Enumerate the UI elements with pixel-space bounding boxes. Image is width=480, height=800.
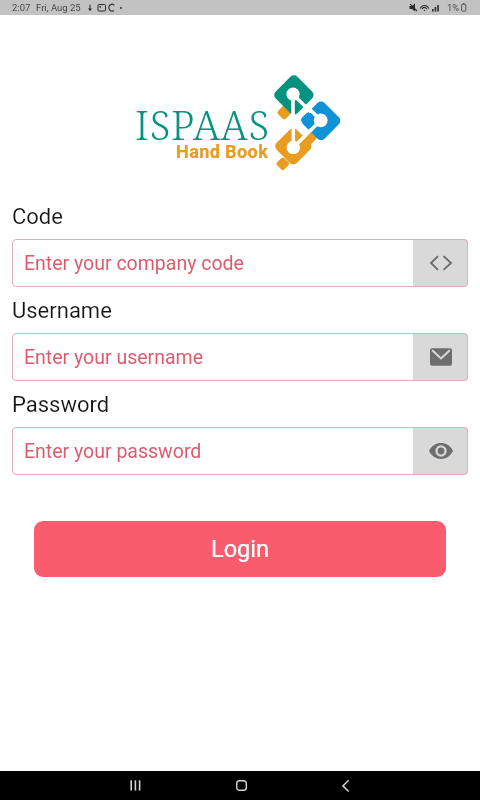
button[interactable]: Enter your company code xyxy=(12,239,468,287)
staticText: Code xyxy=(12,204,63,230)
staticText: ISPAAS xyxy=(135,97,270,151)
staticText: Login xyxy=(211,535,269,563)
button[interactable]: Code xyxy=(413,239,468,287)
button[interactable]: Recent apps xyxy=(113,771,158,800)
staticText: Enter your password xyxy=(24,440,202,463)
staticText: Hand Book xyxy=(176,141,269,162)
staticText: Fri, Aug 25 xyxy=(36,2,81,13)
staticText: Username xyxy=(12,298,112,324)
staticText: Password xyxy=(12,392,110,418)
button[interactable]: Home xyxy=(219,771,264,800)
button[interactable]: Username xyxy=(413,333,468,381)
staticText: Enter your company code xyxy=(24,252,244,275)
button[interactable]: Enter your password xyxy=(12,427,468,475)
button[interactable]: Login xyxy=(34,521,446,577)
staticText: 2:07 xyxy=(12,2,31,13)
button[interactable]: Enter your username xyxy=(12,333,468,381)
staticText: 1% xyxy=(447,2,460,13)
button[interactable]: Back xyxy=(323,771,368,800)
staticText: Enter your username xyxy=(24,346,203,369)
button[interactable]: Password xyxy=(413,427,468,475)
